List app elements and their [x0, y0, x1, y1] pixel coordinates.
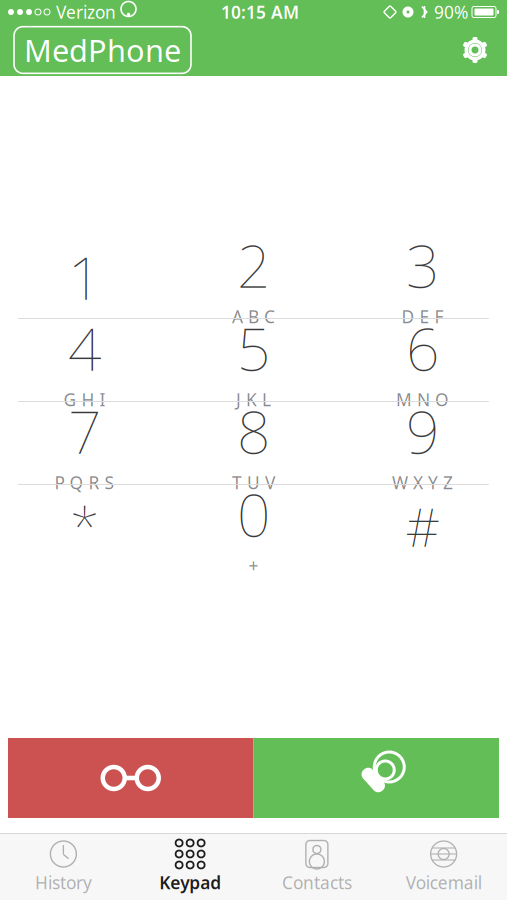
staticText: 90%	[434, 0, 468, 23]
button[interactable]: 6	[338, 319, 507, 401]
staticText: 3	[406, 226, 439, 304]
button[interactable]: 7	[0, 402, 169, 484]
button[interactable]: Contacts	[253, 834, 380, 900]
button[interactable]: Voicemail	[8, 738, 253, 818]
staticText: Voicemail	[406, 871, 482, 894]
staticText: 4	[68, 309, 101, 387]
staticText: Verizon	[56, 0, 116, 23]
button[interactable]: History	[0, 834, 127, 900]
staticText: 1	[68, 238, 101, 316]
staticText: MedPhone	[24, 30, 181, 70]
staticText: 0	[237, 475, 270, 553]
staticText: J K L	[236, 388, 271, 411]
staticText: 6	[406, 309, 439, 387]
staticText: 9	[406, 392, 439, 470]
button[interactable]: 1	[0, 236, 169, 318]
button[interactable]: Settings	[455, 30, 495, 70]
staticText: Keypad	[159, 871, 221, 894]
staticText: A B C	[232, 305, 275, 328]
staticText: 5	[237, 309, 270, 387]
button[interactable]: *	[0, 485, 169, 567]
button[interactable]: Call	[253, 738, 499, 818]
button[interactable]: 9	[338, 402, 507, 484]
button[interactable]: Voicemail	[380, 834, 507, 900]
staticText: +	[248, 554, 258, 577]
staticText: P Q R S	[54, 471, 114, 494]
button[interactable]: 2	[169, 236, 338, 318]
staticText: 8	[237, 392, 270, 470]
staticText: W X Y Z	[392, 471, 453, 494]
button[interactable]: Keypad	[127, 834, 254, 900]
staticText: 10:15 AM	[221, 0, 299, 23]
staticText: T U V	[232, 471, 275, 494]
staticText: M N O	[396, 388, 449, 411]
staticText: 2	[237, 226, 270, 304]
staticText: *	[70, 491, 99, 561]
button[interactable]: 3	[338, 236, 507, 318]
staticText: 7	[68, 392, 101, 470]
staticText: G H I	[63, 388, 105, 411]
staticText: #	[405, 491, 439, 561]
button[interactable]: 5	[169, 319, 338, 401]
button[interactable]: 0	[169, 485, 338, 567]
button[interactable]: #	[338, 485, 507, 567]
button[interactable]: MedPhone	[14, 27, 191, 73]
staticText: History	[35, 871, 92, 894]
staticText: Contacts	[282, 871, 352, 894]
staticText: D E F	[401, 305, 443, 328]
button[interactable]: 4	[0, 319, 169, 401]
button[interactable]: 8	[169, 402, 338, 484]
